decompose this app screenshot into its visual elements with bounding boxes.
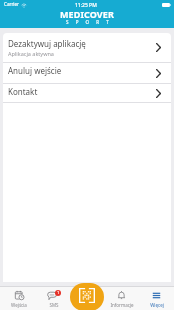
button[interactable]: Anuluj wejście (3, 63, 171, 83)
staticText: Carrier (4, 1, 19, 7)
button[interactable]: Dezaktywuj aplikację (3, 33, 171, 62)
button[interactable]: Kontakt (3, 84, 171, 102)
staticText: Aplikacja aktywna (8, 50, 54, 57)
button[interactable]: 1 (36, 287, 71, 310)
staticText: MEDICOVER (60, 8, 114, 20)
staticText: 1 (57, 290, 60, 296)
staticText: Więcej (150, 302, 164, 308)
button[interactable]: Informacje (104, 287, 139, 310)
staticText: S P O R T (66, 19, 112, 25)
button[interactable]: Wejścia (2, 287, 36, 310)
button[interactable]: Więcej (139, 287, 174, 310)
staticText: SMS (49, 302, 59, 308)
staticText: 11:25 PM (75, 2, 97, 9)
staticText: Wejścia (11, 302, 27, 308)
staticText: Anuluj wejście (8, 65, 62, 76)
staticText: Informacje (110, 302, 134, 308)
staticText: Kontakt (8, 86, 38, 97)
button[interactable]: Skanuj kod QR (70, 283, 104, 310)
staticText: Dezaktywuj aplikację (8, 38, 86, 49)
